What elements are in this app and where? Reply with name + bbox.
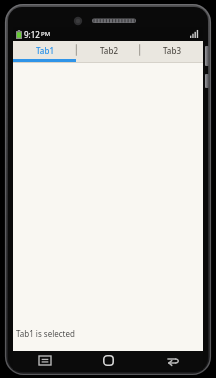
staticText: Tab1 — [36, 45, 54, 56]
staticText: Tab2 — [100, 45, 118, 56]
button[interactable]: Home — [77, 351, 140, 370]
staticText: Tab1 is selected — [16, 328, 75, 339]
button[interactable]: Tab3 — [140, 41, 203, 59]
button[interactable]: Back — [140, 351, 203, 370]
staticText: Tab3 — [163, 45, 181, 56]
button[interactable]: Tab1 — [13, 41, 77, 59]
staticText: 9:12 — [24, 29, 40, 40]
staticText: PM — [41, 30, 51, 38]
button[interactable]: Tab2 — [77, 41, 140, 59]
button[interactable]: Recent apps — [13, 351, 77, 370]
